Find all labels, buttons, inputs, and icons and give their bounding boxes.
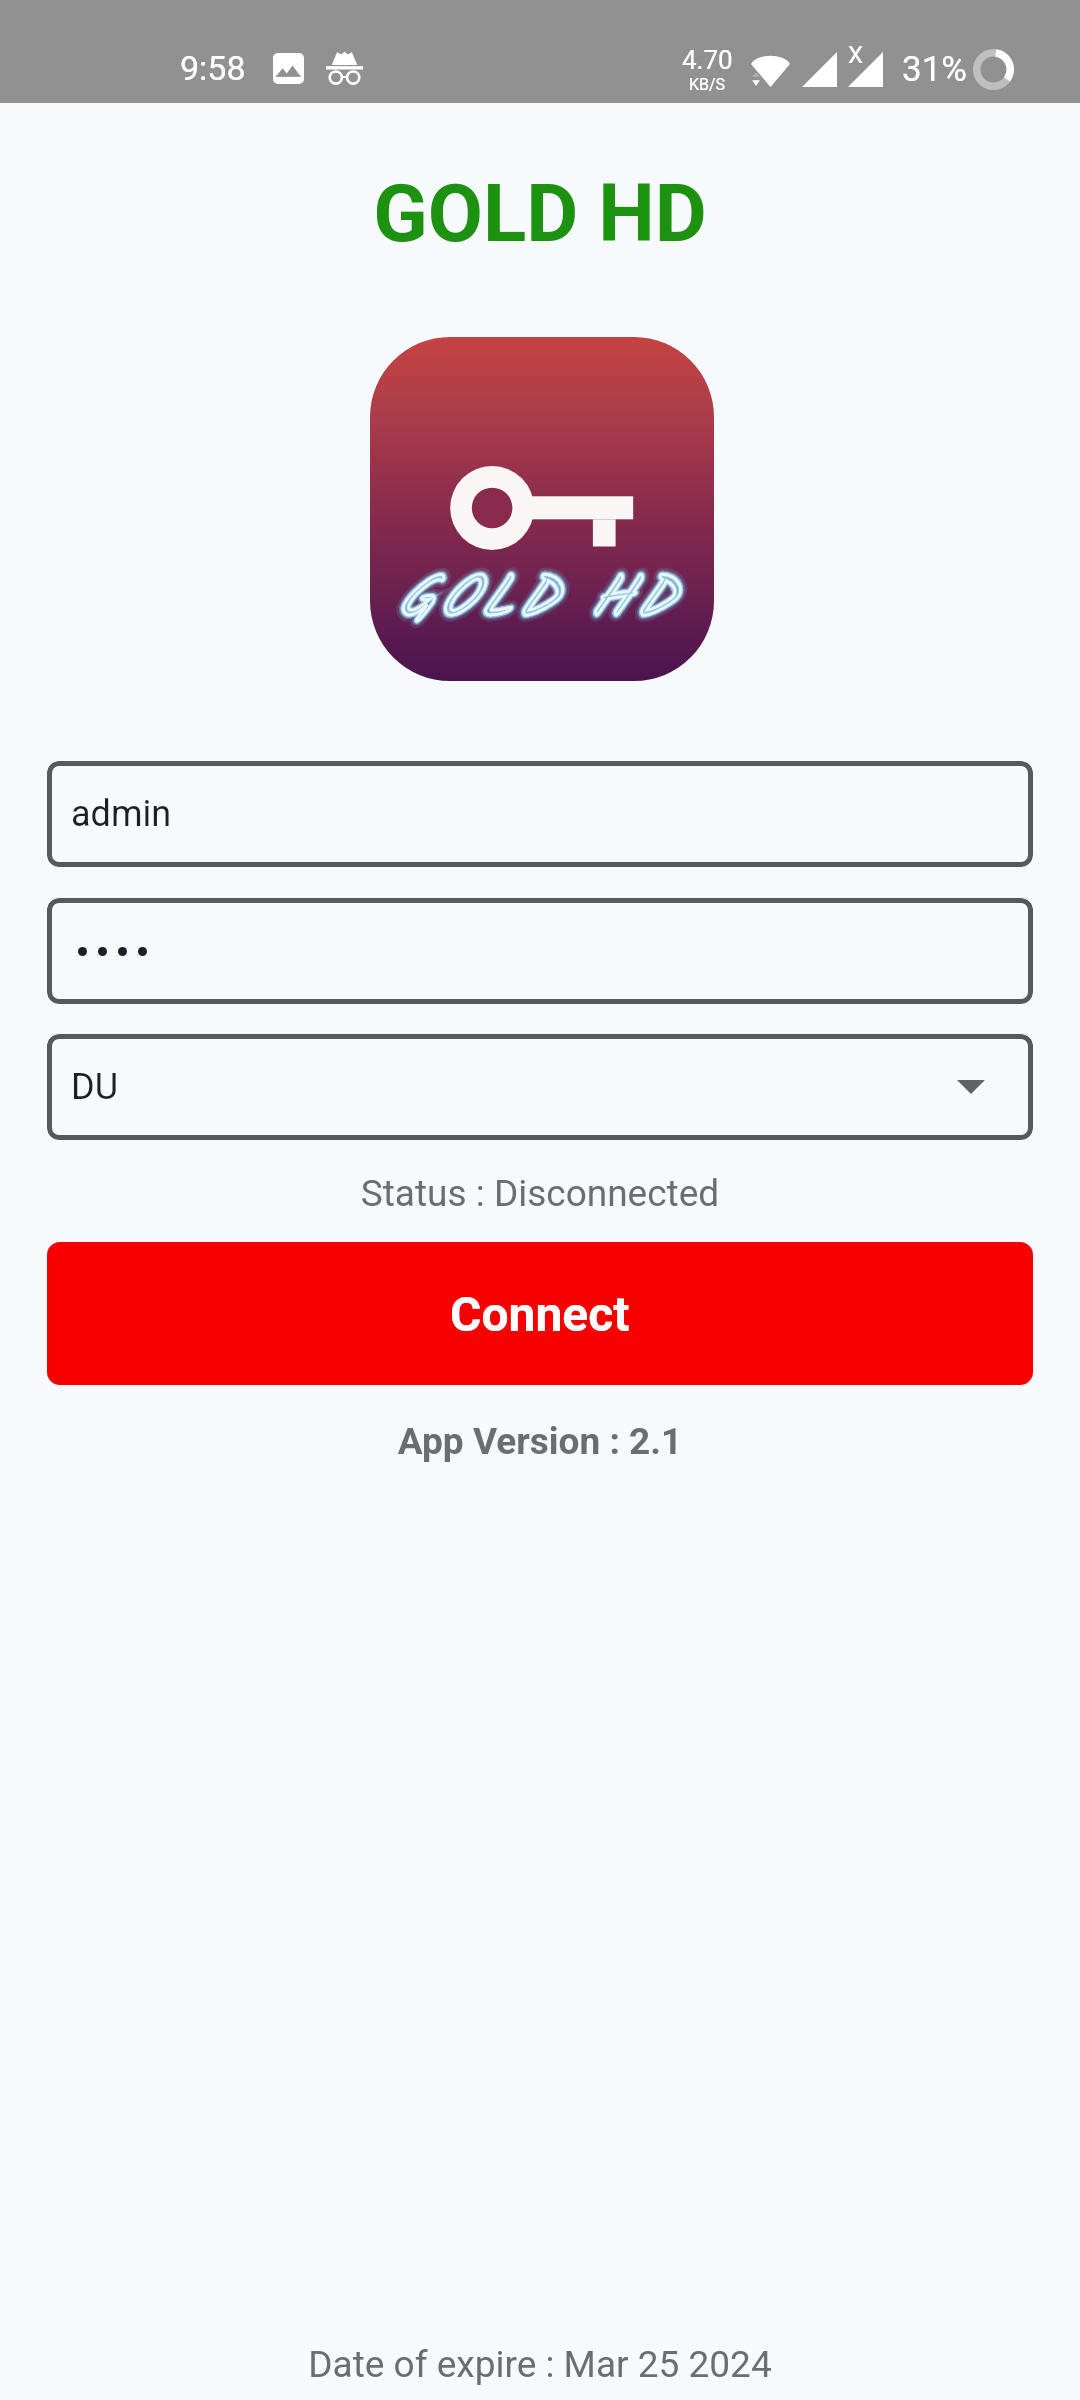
button[interactable]: Username <box>47 761 1033 867</box>
staticText: GOLD HD <box>370 554 709 646</box>
button[interactable]: Select server <box>47 1034 1033 1140</box>
staticText: App Version : 2.1 <box>0 1420 1080 1463</box>
staticText: 31% <box>902 49 967 90</box>
button[interactable]: Connect <box>47 1242 1033 1385</box>
staticText: KB/S <box>689 75 726 94</box>
staticText: 4.70 <box>682 45 733 75</box>
staticText: GOLD HD <box>370 554 709 646</box>
button[interactable]: Password <box>47 898 1033 1004</box>
staticText: X <box>848 41 864 69</box>
staticText: Status : Disconnected <box>0 1172 1080 1215</box>
staticText: Connect <box>450 1286 630 1342</box>
staticText: GOLD HD <box>370 554 709 646</box>
staticText: GOLD HD <box>0 167 1080 261</box>
staticText: GOLD HD <box>370 554 709 646</box>
staticText: DU <box>71 1066 118 1108</box>
staticText: Date of expire : Mar 25 2024 <box>0 2343 1080 2386</box>
staticText: admin <box>71 793 172 835</box>
staticText: 9:58 <box>180 48 246 88</box>
